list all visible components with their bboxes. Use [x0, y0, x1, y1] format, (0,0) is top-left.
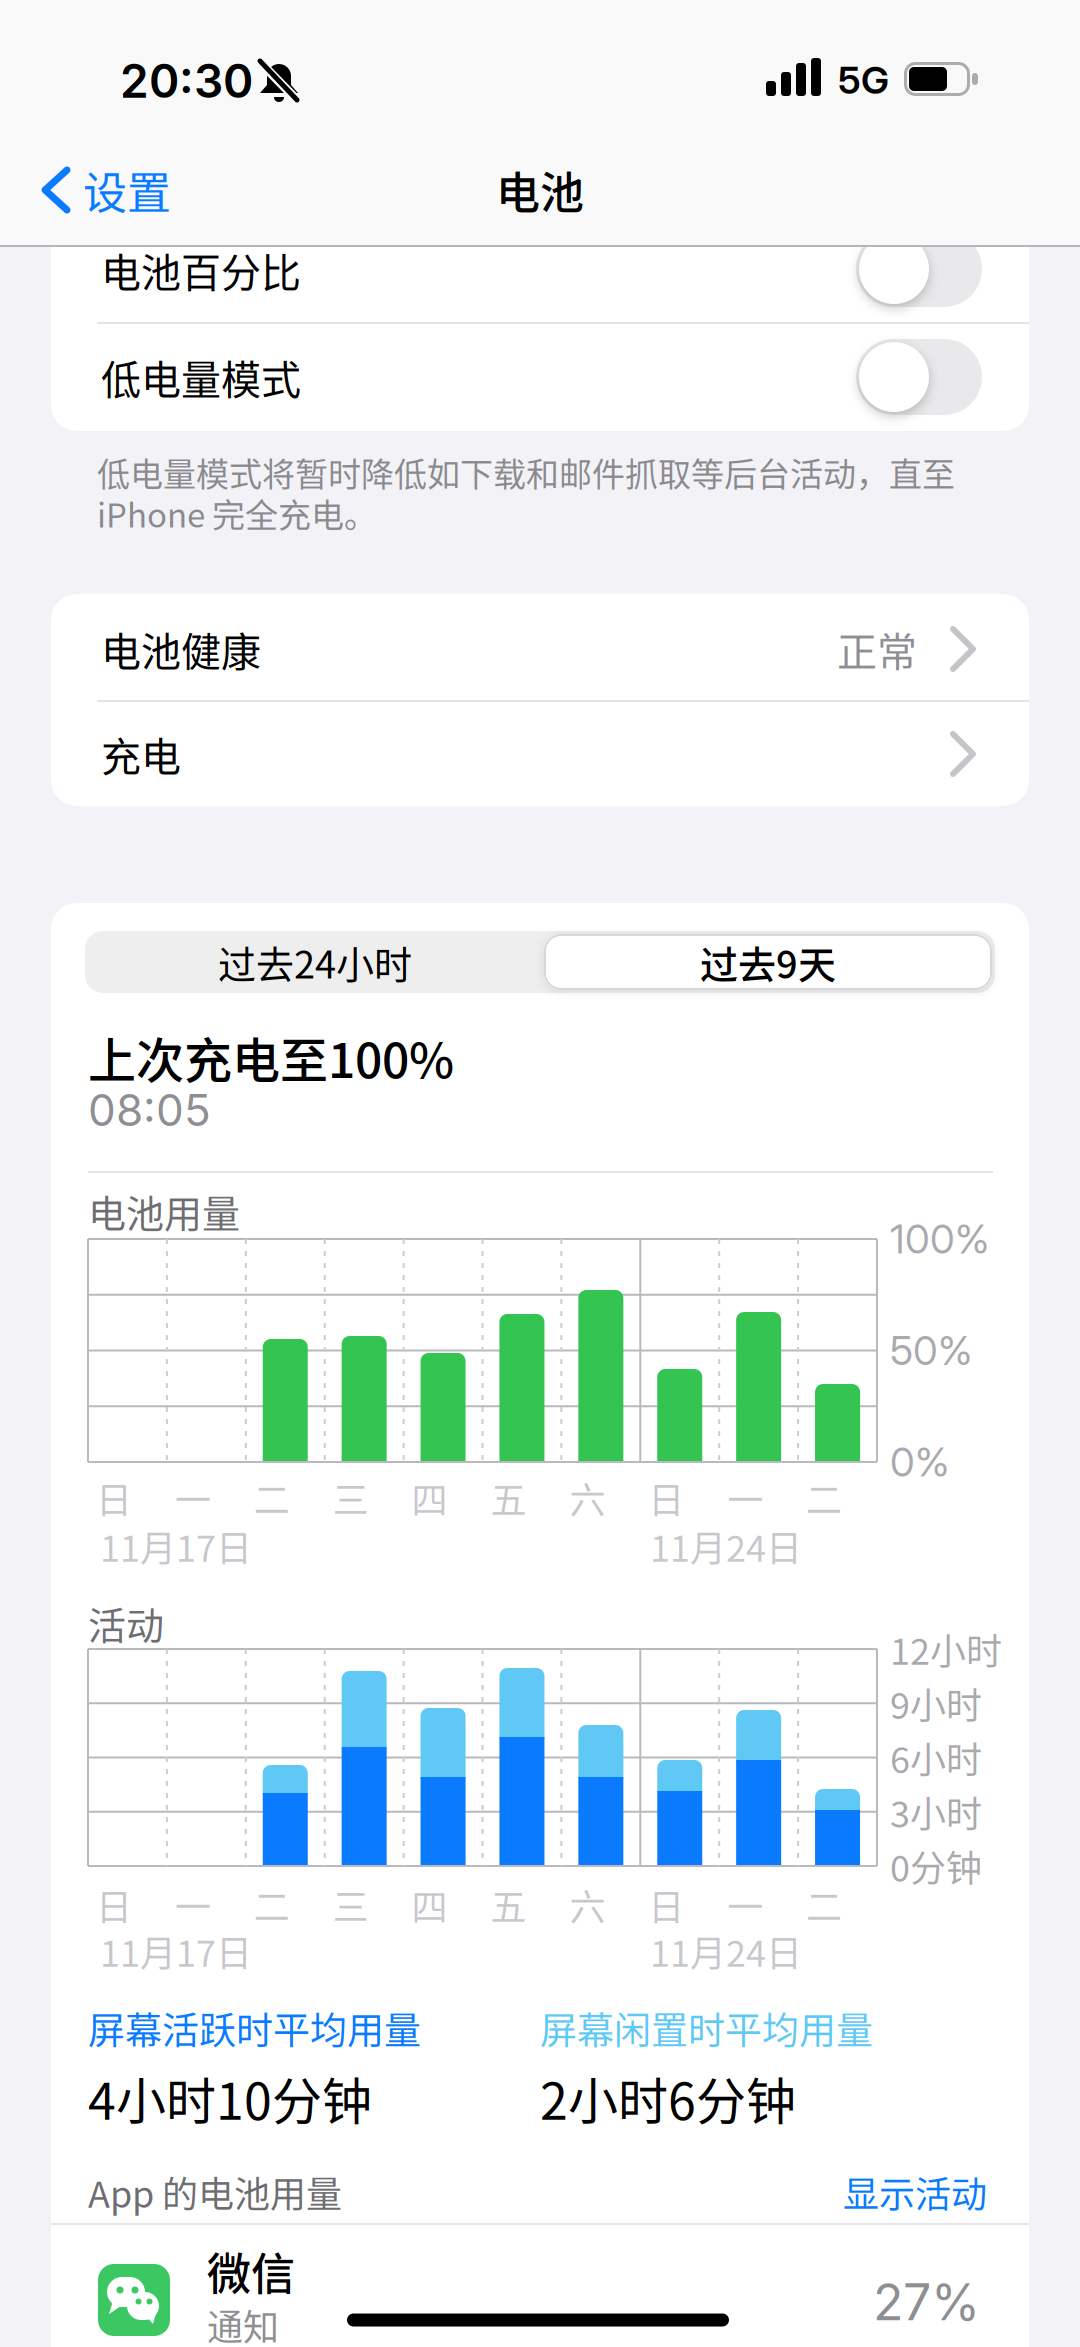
staticText: 上次充电至100% [88, 1022, 454, 1092]
staticText: 0分钟 [890, 1840, 982, 1892]
staticText: 12小时 [890, 1623, 1002, 1675]
staticText: 100% [890, 1215, 989, 1263]
staticText: 活动 [88, 1595, 164, 1650]
staticText: 四 [412, 1472, 448, 1524]
staticText: 二 [254, 1879, 290, 1931]
staticText: App 的电池用量 [88, 2166, 342, 2218]
staticText: 一 [175, 1472, 211, 1524]
staticText: 六 [569, 1879, 605, 1931]
staticText: 一 [727, 1879, 763, 1931]
staticText: 20:30 [120, 53, 253, 109]
staticText: 通知 [207, 2299, 279, 2347]
button[interactable]: 电池健康 [51, 596, 1029, 702]
staticText: 五 [490, 1879, 526, 1931]
staticText: 50% [890, 1326, 972, 1375]
staticText: 三 [333, 1879, 369, 1931]
staticText: 9小时 [890, 1677, 982, 1729]
staticText: 屏幕活跃时平均用量 [88, 2001, 421, 2055]
button[interactable]: 低电量模式 [856, 339, 982, 415]
button[interactable]: 过去9天 [542, 931, 994, 993]
staticText: 低电量模式 [101, 348, 301, 406]
staticText: 11月24日 [650, 1925, 802, 1977]
staticText: 6小时 [890, 1731, 982, 1783]
staticText: 电池健康 [101, 620, 261, 678]
staticText: 5G [838, 57, 889, 103]
staticText: 11月17日 [100, 1520, 252, 1572]
staticText: 充电 [101, 725, 181, 783]
button[interactable]: 微信 [51, 2251, 1029, 2347]
staticText: 过去9天 [700, 934, 836, 989]
staticText: 0% [890, 1438, 949, 1486]
staticText: 二 [806, 1879, 842, 1931]
button[interactable]: 显示活动 [843, 2166, 987, 2218]
button[interactable]: 设置 [41, 158, 171, 222]
button[interactable]: 充电 [51, 702, 1029, 806]
staticText: iPhone 完全充电。 [97, 489, 377, 537]
staticText: 设置 [83, 158, 171, 222]
staticText: 11月24日 [650, 1520, 802, 1572]
staticText: 电池用量 [88, 1183, 240, 1238]
staticText: 一 [175, 1879, 211, 1931]
staticText: 四 [412, 1879, 448, 1931]
staticText: 11月17日 [100, 1925, 252, 1977]
staticText: 27% [873, 2272, 980, 2332]
button[interactable]: 电池百分比 [856, 231, 982, 307]
staticText: 电池 [496, 158, 584, 222]
staticText: 2小时6分钟 [540, 2062, 796, 2134]
staticText: 正常 [837, 620, 917, 678]
staticText: 08:05 [88, 1083, 211, 1137]
staticText: 3小时 [890, 1786, 982, 1838]
staticText: 三 [333, 1472, 369, 1524]
staticText: 屏幕闲置时平均用量 [540, 2001, 873, 2055]
staticText: 低电量模式将暂时降低如下载和邮件抓取等后台活动，直至 [97, 448, 955, 496]
staticText: 显示活动 [843, 2166, 987, 2218]
staticText: 日 [96, 1879, 132, 1931]
staticText: 日 [96, 1472, 132, 1524]
button[interactable]: 过去24小时 [95, 931, 535, 993]
staticText: 六 [569, 1472, 605, 1524]
staticText: 电池百分比 [101, 241, 301, 299]
staticText: 一 [727, 1472, 763, 1524]
staticText: 日 [648, 1879, 684, 1931]
staticText: 过去24小时 [218, 934, 412, 989]
staticText: 4小时10分钟 [88, 2062, 372, 2134]
staticText: 二 [806, 1472, 842, 1524]
staticText: 日 [648, 1472, 684, 1524]
staticText: 微信 [207, 2239, 295, 2303]
staticText: 二 [254, 1472, 290, 1524]
staticText: 五 [490, 1472, 526, 1524]
